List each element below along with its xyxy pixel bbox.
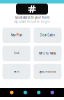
staticText: Clear Cache [39,34,55,37]
button[interactable]: New Plan [2,28,30,43]
staticText: New Plan [10,34,22,37]
button[interactable]: Wi-Fi [2,64,30,79]
button[interactable]: MP3 to M4A [33,46,61,61]
staticText: Wi-Fi [13,70,19,73]
staticText: MP3 to M4A [39,52,56,55]
staticText: Quick access to your tools [15,16,49,19]
button[interactable]: System Boost [33,64,61,79]
button[interactable]: Tools [23,91,27,94]
staticText: System Boost [39,70,56,73]
staticText: Tap a card below to begin [14,20,50,23]
button[interactable]: Clear Cache [33,28,61,43]
staticText: Link [14,52,19,55]
button[interactable]: Profile [50,91,54,94]
button[interactable]: Link [2,46,30,61]
button[interactable]: Home [10,91,13,94]
button[interactable]: Library [37,91,41,94]
